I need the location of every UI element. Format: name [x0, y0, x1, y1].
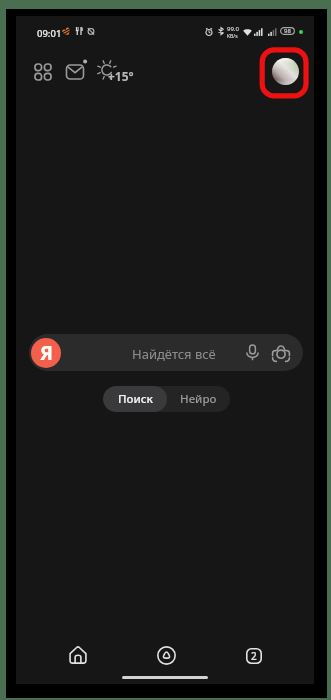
staticText: Нейро	[180, 391, 217, 407]
button[interactable]: Tabs	[236, 638, 272, 674]
staticText: Я	[40, 340, 53, 366]
button[interactable]: Я	[29, 334, 303, 371]
button[interactable]: Assistant	[148, 637, 184, 673]
staticText: Поиск	[118, 391, 153, 407]
button[interactable]: +15°	[108, 68, 134, 84]
button[interactable]: Поиск	[103, 386, 167, 412]
button[interactable]: Weather	[90, 53, 124, 87]
button[interactable]: Mail	[59, 55, 93, 89]
staticText: 09:01	[37, 27, 62, 40]
staticText: KB/s	[227, 33, 238, 40]
staticText: 2	[251, 649, 257, 663]
button[interactable]: Profile	[267, 53, 303, 89]
button[interactable]: Нейро	[167, 386, 230, 412]
staticText: 98	[284, 27, 291, 35]
staticText: 99.0	[227, 25, 239, 33]
button[interactable]: Apps	[26, 55, 60, 89]
button[interactable]: Home	[60, 637, 96, 673]
staticText: Найдётся всё	[132, 345, 216, 363]
button[interactable]: Image search	[262, 334, 299, 371]
button[interactable]: Voice search	[234, 334, 271, 371]
